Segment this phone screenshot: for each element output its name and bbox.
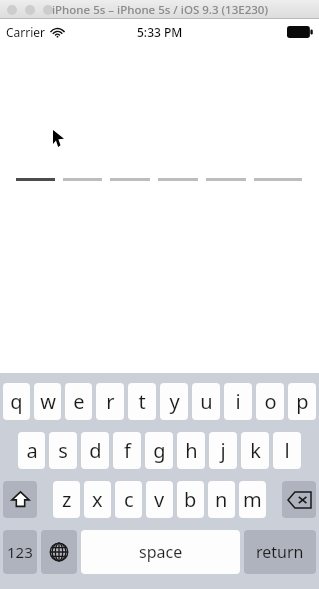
button[interactable]: i <box>224 383 252 420</box>
staticText: k <box>250 437 261 464</box>
staticText: o <box>264 388 277 415</box>
button[interactable]: k <box>241 432 269 469</box>
staticText: g <box>153 437 166 464</box>
button[interactable]: c <box>115 481 142 518</box>
staticText: return <box>256 541 304 563</box>
button[interactable]: p <box>288 383 316 420</box>
staticText: r <box>106 388 115 415</box>
staticText: iPhone 5s – iPhone 5s / iOS 9.3 (13E230) <box>52 2 268 18</box>
button[interactable]: u <box>192 383 220 420</box>
staticText: q <box>10 388 23 415</box>
button[interactable]: m <box>239 481 266 518</box>
button[interactable]: y <box>160 383 188 420</box>
button[interactable]: g <box>145 432 173 469</box>
button[interactable]: Backspace <box>282 481 316 518</box>
staticText: p <box>296 388 309 415</box>
staticText: t <box>138 388 146 415</box>
button[interactable]: space <box>81 530 240 574</box>
button[interactable]: s <box>49 432 77 469</box>
button[interactable]: n <box>208 481 235 518</box>
button[interactable]: l <box>273 432 301 469</box>
staticText: i <box>235 388 241 415</box>
button[interactable]: a <box>18 432 45 469</box>
button[interactable]: f <box>113 432 141 469</box>
staticText: u <box>200 388 213 415</box>
button[interactable]: b <box>177 481 204 518</box>
staticText: space <box>139 541 183 563</box>
button[interactable]: Shift <box>3 481 37 518</box>
button[interactable]: e <box>65 383 92 420</box>
staticText: n <box>215 486 228 513</box>
button[interactable]: w <box>34 383 61 420</box>
button[interactable]: t <box>128 383 156 420</box>
staticText: f <box>124 437 131 464</box>
staticText: z <box>62 486 72 513</box>
staticText: c <box>124 486 134 513</box>
staticText: 5:33 PM <box>137 24 183 40</box>
button[interactable]: 123 <box>3 530 37 574</box>
staticText: e <box>73 388 85 415</box>
button[interactable]: z <box>53 481 80 518</box>
button[interactable]: x <box>84 481 111 518</box>
staticText: a <box>26 437 38 464</box>
button[interactable]: j <box>209 432 237 469</box>
staticText: v <box>154 486 165 513</box>
button[interactable]: Switch keyboard <box>41 530 77 574</box>
staticText: h <box>185 437 198 464</box>
staticText: b <box>184 486 197 513</box>
staticText: 123 <box>7 542 33 562</box>
staticText: s <box>58 437 68 464</box>
button[interactable]: d <box>81 432 109 469</box>
staticText: Carrier <box>6 24 46 40</box>
staticText: w <box>40 388 56 415</box>
staticText: y <box>169 388 180 415</box>
staticText: x <box>92 486 103 513</box>
button[interactable]: q <box>3 383 30 420</box>
button[interactable]: r <box>96 383 124 420</box>
button[interactable]: h <box>177 432 205 469</box>
staticText: m <box>243 486 262 513</box>
staticText: l <box>284 437 290 464</box>
button[interactable]: return <box>244 530 316 574</box>
button[interactable]: v <box>146 481 173 518</box>
button[interactable]: o <box>256 383 284 420</box>
staticText: d <box>89 437 102 464</box>
staticText: j <box>220 437 226 464</box>
